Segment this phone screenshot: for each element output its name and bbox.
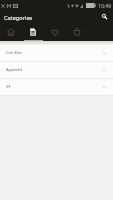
staticText: 10:49	[98, 2, 112, 9]
button[interactable]: XY	[0, 79, 113, 95]
button[interactable]: Home	[0, 25, 22, 41]
button[interactable]: Categories	[22, 25, 44, 41]
button[interactable]: Cart	[66, 25, 88, 41]
button[interactable]: Apparels	[0, 62, 113, 78]
button[interactable]: Search	[98, 11, 110, 22]
button[interactable]: Con-Elec	[0, 45, 113, 61]
staticText: XY	[6, 84, 11, 89]
staticText: Con-Elec	[6, 50, 23, 55]
staticText: Apparels	[6, 67, 23, 72]
staticText: Categories	[4, 14, 33, 22]
button[interactable]: Favourites	[44, 25, 66, 41]
